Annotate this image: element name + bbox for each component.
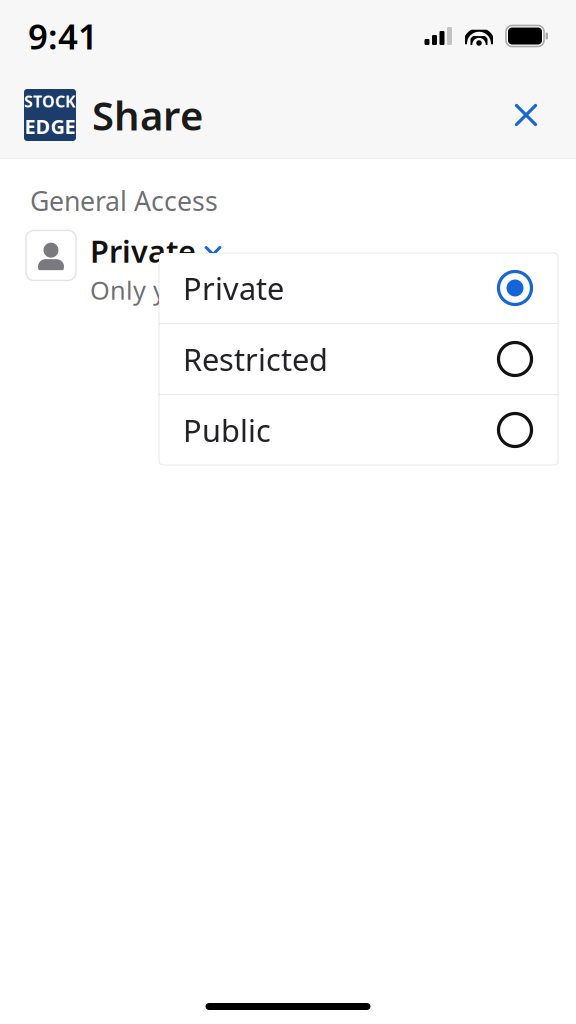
staticText: Public xyxy=(183,410,271,450)
button[interactable]: Public xyxy=(159,395,558,465)
staticText: STOCK xyxy=(24,91,76,112)
button[interactable]: Private xyxy=(159,253,558,323)
staticText: Share xyxy=(92,88,203,141)
staticText: Restricted xyxy=(183,339,328,379)
button[interactable]: Close xyxy=(500,89,552,141)
staticText: 9:41 xyxy=(28,13,98,59)
staticText: Private xyxy=(90,230,196,271)
staticText: General Access xyxy=(30,183,218,218)
button[interactable]: Restricted xyxy=(159,324,558,394)
button[interactable]: Private xyxy=(90,230,224,271)
staticText: EDGE xyxy=(24,113,75,139)
staticText: Private xyxy=(183,268,284,308)
staticText: Only you xyxy=(90,273,197,307)
